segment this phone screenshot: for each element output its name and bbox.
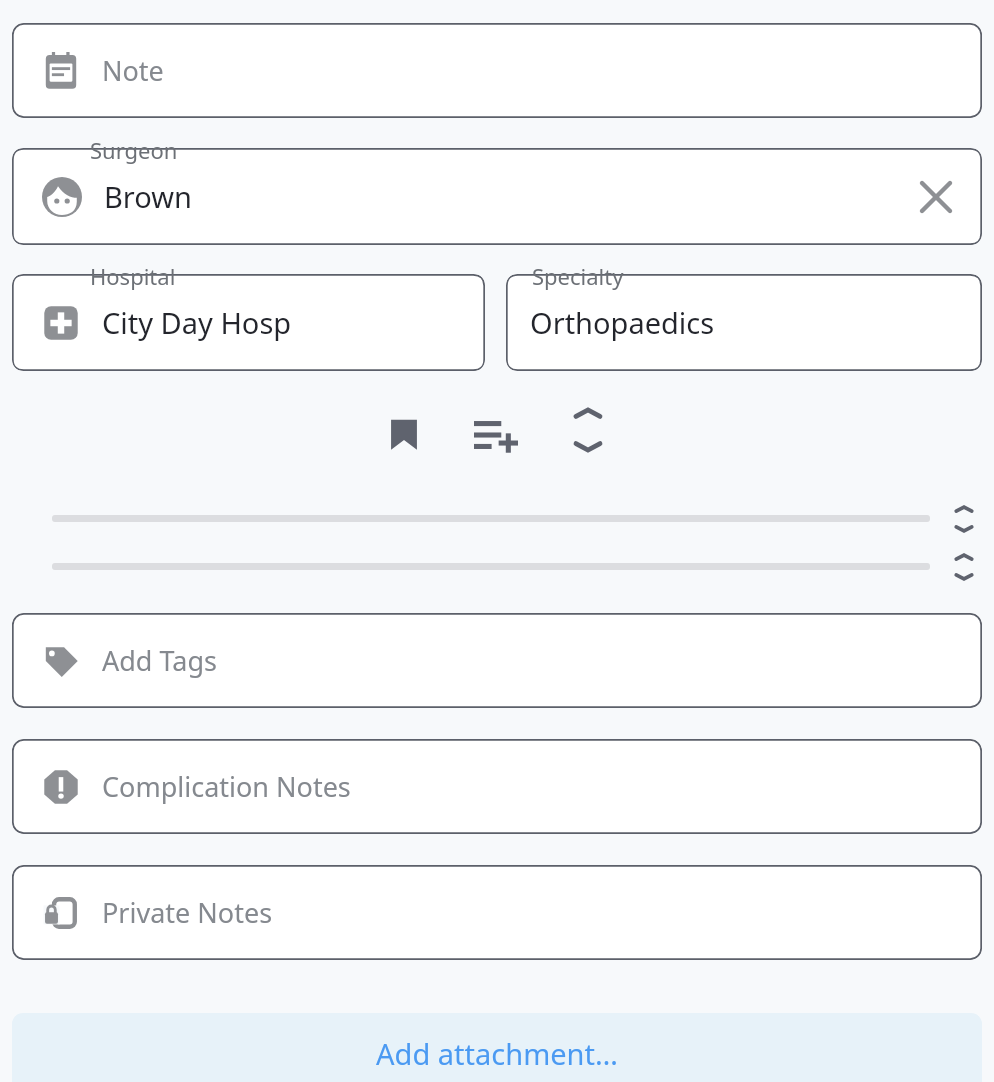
staticText: Private Notes [102, 894, 273, 931]
button[interactable]: Clear surgeon [908, 169, 964, 225]
staticText: Brown [104, 177, 192, 216]
button[interactable]: Add attachment… [12, 1013, 982, 1082]
button[interactable]: Complication Notes [12, 739, 982, 834]
staticText: Note [102, 52, 164, 89]
button[interactable]: Private Notes [12, 865, 982, 960]
staticText: Hospital [90, 261, 176, 291]
button[interactable]: Adjust [944, 547, 984, 587]
staticText: Add Tags [102, 642, 218, 679]
button[interactable]: Brown [12, 148, 982, 245]
button[interactable]: Note [12, 23, 982, 118]
staticText: Complication Notes [102, 768, 351, 805]
button[interactable]: Adjust [944, 499, 984, 539]
staticText: Surgeon [90, 135, 178, 165]
staticText: City Day Hosp [102, 303, 292, 342]
button[interactable]: Add to list [466, 406, 526, 466]
button[interactable]: Adjust value [560, 402, 616, 458]
button[interactable]: Bookmark [376, 406, 432, 462]
button[interactable]: Add Tags [12, 613, 982, 708]
button[interactable]: City Day Hosp [12, 274, 485, 371]
staticText: Specialty [532, 261, 624, 291]
button[interactable]: Orthopaedics [506, 274, 982, 371]
staticText: Add attachment… [376, 1034, 618, 1073]
staticText: Orthopaedics [530, 303, 715, 342]
